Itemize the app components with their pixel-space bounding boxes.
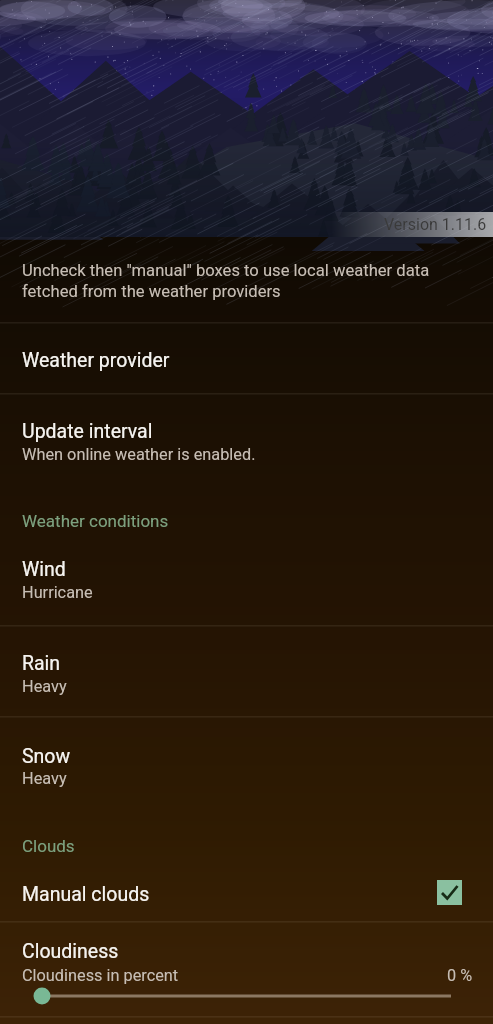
staticText: Rain <box>22 652 61 675</box>
button[interactable]: Weather provider <box>0 323 493 393</box>
button[interactable]: Manual clouds <box>0 862 493 921</box>
staticText: 0 % <box>447 966 473 985</box>
staticText: Heavy <box>22 677 67 696</box>
staticText: Manual clouds <box>22 883 150 906</box>
staticText: Weather conditions <box>22 511 169 531</box>
button[interactable]: Cloudiness <box>0 922 493 1016</box>
staticText: Cloudiness <box>22 940 119 963</box>
button[interactable]: Update interval <box>0 394 493 490</box>
staticText: Heavy <box>22 769 67 788</box>
staticText: Clouds <box>22 836 75 856</box>
button[interactable]: Rain <box>0 626 493 716</box>
staticText: Weather provider <box>22 349 170 372</box>
button[interactable]: Cloudiness slider <box>0 984 493 1008</box>
staticText: Snow <box>22 745 71 768</box>
staticText: Hurricane <box>22 583 93 602</box>
staticText: Cloudiness in percent <box>22 966 179 985</box>
button[interactable]: Wind <box>0 540 493 625</box>
staticText: Wind <box>22 558 66 581</box>
button[interactable]: Snow <box>0 717 493 806</box>
staticText: Version 1.11.6 <box>384 215 487 234</box>
staticText: Update interval <box>22 420 153 443</box>
staticText: When online weather is enabled. <box>22 445 256 464</box>
staticText: Uncheck then "manual" boxes to use local… <box>22 261 430 301</box>
button[interactable]: Uncheck then "manual" boxes to use local… <box>0 237 493 322</box>
other: Manual clouds checkbox <box>437 880 462 905</box>
